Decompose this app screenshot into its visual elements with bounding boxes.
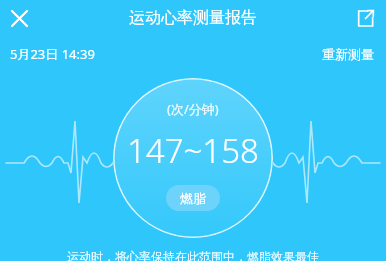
button[interactable]: 燃脂	[166, 185, 220, 211]
staticText: 重新测量	[322, 46, 374, 62]
staticText: 5月23日 14:39	[10, 45, 95, 63]
staticText: 147~158	[127, 128, 259, 173]
staticText: 运动时，将心率保持在此范围中，燃脂效果最佳	[18, 249, 368, 261]
staticText: (次/分钟)	[167, 100, 219, 118]
button[interactable]: Share	[350, 3, 380, 33]
button[interactable]: 重新测量	[310, 43, 386, 65]
button[interactable]: Close	[4, 3, 34, 33]
staticText: 燃脂	[180, 190, 206, 206]
staticText: 运动心率测量报告	[129, 8, 257, 28]
